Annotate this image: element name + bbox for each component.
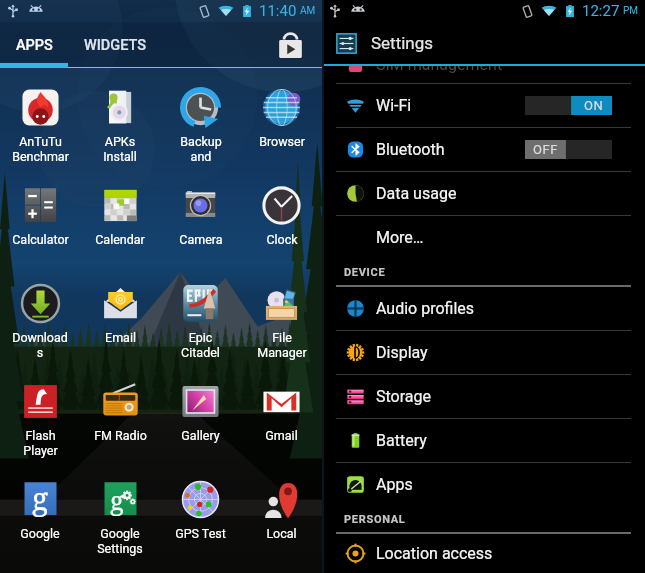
button[interactable]: WIDGETS (68, 22, 163, 68)
staticText: Gallery (181, 428, 220, 443)
staticText: Wi-Fi (376, 96, 412, 115)
staticText: Display (376, 343, 428, 362)
staticText: Bluetooth (376, 140, 445, 159)
staticText: PM (623, 5, 639, 17)
staticText: Settings (371, 33, 434, 53)
button[interactable]: GPS Test (160, 460, 241, 558)
staticText: Local (266, 526, 297, 541)
button[interactable]: Bluetooth (322, 128, 645, 171)
staticText: Browser (259, 134, 305, 149)
button[interactable]: Epic Citadel (160, 264, 241, 362)
button[interactable]: OFF (525, 140, 612, 159)
button[interactable]: g (80, 460, 160, 558)
staticText: g (32, 478, 49, 519)
button[interactable]: Backup and (160, 68, 241, 166)
button[interactable]: Wi-Fi (322, 84, 645, 127)
staticText: Data usage (376, 184, 457, 203)
button[interactable]: Display (322, 331, 645, 374)
button[interactable]: APKs Install (80, 68, 160, 166)
staticText: Backup and (180, 134, 222, 164)
staticText: Email (105, 330, 136, 345)
staticText: Flash Player (23, 428, 58, 458)
button[interactable]: Audio profiles (322, 287, 645, 330)
button[interactable]: File Manager (241, 264, 322, 362)
button[interactable]: SIM management (322, 64, 645, 83)
staticText: GPS Test (175, 526, 226, 541)
button[interactable]: More… (322, 216, 645, 259)
button[interactable]: Play Store (267, 22, 313, 68)
button[interactable]: Flash Player (0, 362, 80, 460)
staticText: PERSONAL (344, 513, 406, 526)
staticText: Google Settings (97, 526, 143, 556)
staticText: Audio profiles (376, 299, 475, 318)
staticText: Storage (376, 387, 431, 406)
staticText: AM (300, 5, 316, 17)
staticText: Apps (376, 475, 413, 494)
button[interactable]: g (0, 460, 80, 558)
button[interactable]: Download s (0, 264, 80, 362)
staticText: SIM management (376, 64, 503, 74)
staticText: Gmail (265, 428, 298, 443)
staticText: WIDGETS (84, 37, 147, 54)
staticText: Location access (376, 544, 493, 563)
button[interactable]: APPS (0, 22, 68, 68)
button[interactable]: Gallery (160, 362, 241, 460)
staticText: 11:40 (259, 2, 297, 20)
button[interactable]: AnTuTu Benchmar (0, 68, 80, 166)
staticText: APKs Install (103, 134, 137, 164)
staticText: AnTuTu Benchmar (12, 134, 69, 164)
staticText: Google (20, 526, 60, 541)
button[interactable]: Camera (160, 166, 241, 264)
button[interactable]: Battery (322, 419, 645, 462)
staticText: FM Radio (94, 428, 147, 443)
staticText: Epic Citadel (181, 330, 220, 360)
button[interactable]: Location access (322, 534, 645, 573)
button[interactable]: ON (525, 96, 612, 115)
staticText: More… (376, 228, 424, 247)
staticText: Calculator (12, 232, 69, 247)
staticText: File Manager (257, 330, 307, 360)
staticText: Download s (12, 330, 68, 360)
staticText: DEVICE (344, 266, 386, 279)
button[interactable]: Data usage (322, 172, 645, 215)
staticText: Clock (266, 232, 298, 247)
button[interactable]: Local (241, 460, 322, 558)
button[interactable]: Settings (322, 22, 645, 64)
staticText: APPS (16, 37, 53, 54)
button[interactable]: Browser (241, 68, 322, 166)
staticText: Calendar (95, 232, 145, 247)
button[interactable]: Storage (322, 375, 645, 418)
staticText: ON (584, 98, 604, 113)
staticText: Camera (179, 232, 223, 247)
button[interactable]: Calendar (80, 166, 160, 264)
button[interactable]: FM Radio (80, 362, 160, 460)
staticText: 12:27 (582, 2, 620, 20)
staticText: OFF (533, 142, 558, 157)
staticText: g (110, 482, 124, 517)
button[interactable]: Apps (322, 463, 645, 506)
button[interactable]: Email (80, 264, 160, 362)
button[interactable]: Calculator (0, 166, 80, 264)
staticText: Battery (376, 431, 427, 450)
button[interactable]: Clock (241, 166, 322, 264)
button[interactable]: Gmail (241, 362, 322, 460)
